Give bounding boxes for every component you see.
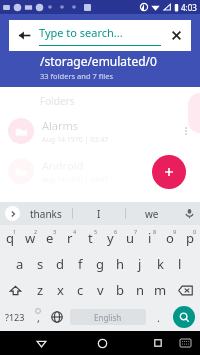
button[interactable]: Hide keyboard [174,332,196,354]
staticText: v [97,281,104,299]
button[interactable]: v [90,277,110,303]
button[interactable]: Home [90,331,114,355]
button[interactable]: a [10,251,30,277]
staticText: . [157,310,160,325]
staticText: e [46,229,54,247]
staticText: j [138,255,142,273]
button[interactable]: p [180,225,200,251]
staticText: Folders [40,94,75,108]
button[interactable]: , [29,303,47,331]
button[interactable]: g [90,251,110,277]
button[interactable]: r [60,225,80,251]
staticText: z [37,281,44,299]
button[interactable]: Add [152,155,186,189]
button[interactable]: we [126,202,178,225]
staticText: i [148,229,152,247]
staticText: u [126,229,135,247]
staticText: Aug 14 1970 | 03:47 [42,135,109,145]
staticText: thanks [30,207,62,221]
button[interactable]: More options [176,151,196,191]
button[interactable]: Recent apps [146,331,170,355]
staticText: h [116,255,125,273]
button[interactable]: Change language [47,303,67,331]
button[interactable]: m [150,277,170,303]
staticText: 33 folders and 7 files [40,71,113,81]
staticText: we [145,207,159,221]
button[interactable]: Clear [161,20,191,51]
button[interactable]: k [150,251,170,277]
staticText: 4 [73,228,77,235]
staticText: /storage/emulated/0 [40,53,157,69]
staticText: n [136,281,145,299]
button[interactable]: e [40,225,60,251]
staticText: t [88,229,93,247]
button[interactable]: b [110,277,130,303]
button[interactable]: Backspace [170,277,200,303]
staticText: k [157,255,164,273]
staticText: English [94,312,122,323]
staticText: g [96,255,104,273]
button[interactable]: English [70,309,146,325]
staticText: s [37,255,44,273]
staticText: w [25,229,36,247]
button[interactable]: u [120,225,140,251]
button[interactable]: Back [29,331,53,355]
staticText: f [78,255,83,273]
staticText: 2 [34,228,38,235]
button[interactable]: Voice input [178,202,200,225]
button[interactable]: t [80,225,100,251]
staticText: o [166,229,174,247]
button[interactable]: I [73,202,125,225]
button[interactable]: ?123 [0,303,29,331]
button[interactable]: z [30,277,50,303]
staticText: Type to search... [39,25,123,40]
button[interactable]: c [70,277,90,303]
staticText: 7 [134,228,138,235]
staticText: y [107,229,114,247]
button[interactable]: o [160,225,180,251]
button[interactable]: thanks [20,202,72,225]
button[interactable]: More options [176,111,196,151]
button[interactable]: Search [167,303,200,331]
button[interactable]: y [100,225,120,251]
staticText: 8 [153,228,157,235]
staticText: x [57,281,64,299]
staticText: 0 [193,228,197,235]
button[interactable]: i [140,225,160,251]
staticText: 6 [114,228,118,235]
button[interactable]: n [130,277,150,303]
staticText: Alarms [42,118,79,133]
button[interactable]: . [149,303,167,331]
staticText: a [16,255,24,273]
staticText: q [6,229,14,247]
button[interactable]: s [30,251,50,277]
button[interactable]: Android [0,151,200,191]
staticText: d [56,255,64,273]
staticText: 1 [13,228,17,235]
button[interactable]: More suggestions [5,206,20,221]
staticText: l [178,255,182,273]
button[interactable]: Back [9,20,39,51]
staticText: c [77,281,84,299]
staticText: Android [42,158,84,173]
staticText: m [154,281,167,299]
staticText: 9 [173,228,177,235]
button[interactable]: Shift [0,277,30,303]
button[interactable]: j [130,251,150,277]
staticText: 3 [53,228,57,235]
button[interactable]: f [70,251,90,277]
button[interactable]: h [110,251,130,277]
button[interactable]: l [170,251,190,277]
staticText: , [37,310,40,325]
staticText: ?123 [5,311,25,323]
button[interactable]: Alarms [0,111,200,151]
button[interactable]: d [50,251,70,277]
staticText: p [186,229,194,247]
button[interactable]: q [0,225,20,251]
button[interactable]: w [20,225,40,251]
button[interactable]: x [50,277,70,303]
staticText: 5 [94,228,98,235]
staticText: I [97,207,101,221]
staticText: b [116,281,124,299]
